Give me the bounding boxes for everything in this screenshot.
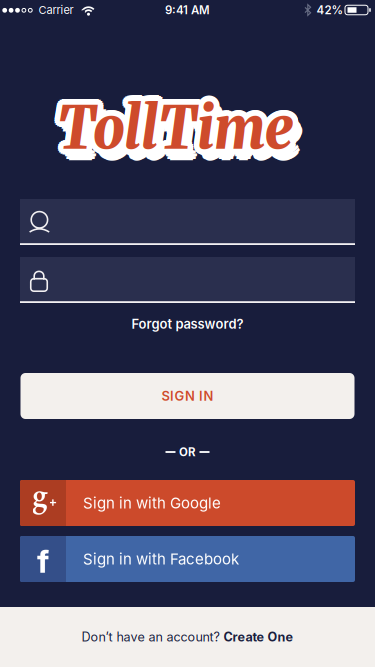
button[interactable]: f: [20, 536, 355, 582]
staticText: TollTime: [60, 86, 296, 159]
staticText: TollTime: [58, 86, 294, 159]
staticText: Sign in with Google: [83, 494, 221, 512]
staticText: TollTime: [62, 95, 298, 168]
staticText: TollTime: [56, 90, 292, 163]
staticText: TollTime: [57, 95, 293, 169]
staticText: TollTime: [61, 88, 297, 161]
staticText: TollTime: [60, 93, 296, 167]
button[interactable]: [20, 257, 355, 303]
staticText: TollTime: [59, 88, 295, 161]
staticText: TollTime: [53, 95, 289, 168]
staticText: TollTime: [53, 93, 289, 167]
button[interactable]: SIGN IN: [20, 373, 354, 419]
staticText: TollTime: [58, 99, 294, 172]
staticText: TollTime: [62, 93, 298, 166]
staticText: TollTime: [56, 93, 292, 166]
staticText: TollTime: [66, 99, 302, 172]
staticText: TollTime: [60, 102, 296, 175]
staticText: TollTime: [55, 95, 291, 168]
staticText: TollTime: [53, 91, 289, 165]
staticText: TollTime: [61, 95, 297, 168]
button[interactable]: g: [20, 480, 355, 526]
staticText: Don’t have an account? Create One: [81, 630, 293, 644]
button[interactable]: Don’t have an account? Create One: [0, 607, 375, 667]
staticText: TollTime: [59, 91, 295, 165]
staticText: TollTime: [61, 91, 297, 165]
staticText: TollTime: [59, 95, 295, 168]
staticText: TollTime: [57, 93, 293, 167]
staticText: TollTime: [57, 87, 293, 161]
staticText: TollTime: [54, 86, 290, 159]
staticText: TollTime: [62, 89, 298, 163]
staticText: TollTime: [51, 91, 287, 165]
staticText: TollTime: [58, 93, 294, 166]
staticText: TollTime: [51, 93, 287, 166]
staticText: g: [32, 474, 47, 515]
staticText: TollTime: [51, 89, 287, 163]
staticText: TollTime: [58, 97, 294, 170]
staticText: TollTime: [65, 102, 301, 175]
staticText: 42%: [316, 3, 343, 17]
staticText: +: [48, 494, 57, 509]
button[interactable]: Forgot password?: [131, 316, 243, 332]
staticText: TollTime: [60, 96, 296, 170]
staticText: TollTime: [54, 96, 290, 170]
staticText: Forgot password?: [131, 316, 243, 332]
staticText: TollTime: [53, 88, 289, 161]
staticText: TollTime: [57, 91, 293, 165]
staticText: f: [37, 542, 49, 580]
staticText: TollTime: [60, 96, 296, 169]
staticText: OR: [179, 445, 196, 459]
staticText: TollTime: [62, 103, 298, 176]
staticText: TollTime: [65, 96, 301, 169]
staticText: TollTime: [55, 91, 291, 165]
staticText: TollTime: [55, 88, 291, 161]
staticText: TollTime: [63, 91, 299, 165]
staticText: TollTime: [57, 89, 293, 163]
staticText: Carrier: [38, 3, 73, 17]
staticText: TollTime: [56, 97, 292, 170]
staticText: TollTime: [58, 90, 294, 163]
button[interactable]: [20, 199, 355, 245]
staticText: TollTime: [53, 89, 289, 163]
staticText: TollTime: [56, 86, 292, 159]
staticText: TollTime: [60, 89, 296, 163]
staticText: Sign in with Facebook: [83, 550, 239, 568]
staticText: SIGN IN: [161, 388, 213, 404]
staticText: 9:41 AM: [165, 3, 210, 17]
